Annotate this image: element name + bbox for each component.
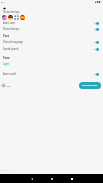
button[interactable]: English (2, 15, 7, 20)
staticText: Speak speed (3, 47, 19, 51)
button[interactable]: Back (28, 175, 35, 182)
staticText: Get more Credits (82, 84, 98, 87)
button[interactable]: Auto scroll (0, 71, 103, 77)
button[interactable]: Spanish (20, 15, 25, 20)
staticText: Text (3, 34, 9, 38)
staticText: Auto start (3, 21, 16, 25)
button[interactable]: Recent apps (68, 175, 75, 182)
button[interactable]: Light (3, 62, 10, 66)
staticText: v 2.1.4 (2, 169, 9, 172)
button[interactable]: Show timings (0, 26, 103, 32)
staticText: Show timings (3, 27, 20, 31)
button[interactable]: Detect language (0, 39, 103, 45)
staticText: Tone (3, 56, 10, 60)
button[interactable]: Speak speed (0, 46, 103, 52)
staticText: Detect language (3, 40, 24, 44)
button[interactable]: German (8, 15, 13, 20)
button[interactable]: Home (48, 175, 55, 182)
staticText: 100 (6, 84, 11, 87)
button[interactable]: Back (0, 4, 8, 12)
staticText: 9:41 (1, 1, 5, 4)
staticText: Show timings (3, 10, 20, 14)
staticText: Auto scroll (3, 72, 16, 76)
button[interactable]: Greek (14, 15, 19, 20)
button[interactable]: Auto start (0, 20, 103, 26)
button[interactable]: Get more Credits (79, 82, 101, 89)
